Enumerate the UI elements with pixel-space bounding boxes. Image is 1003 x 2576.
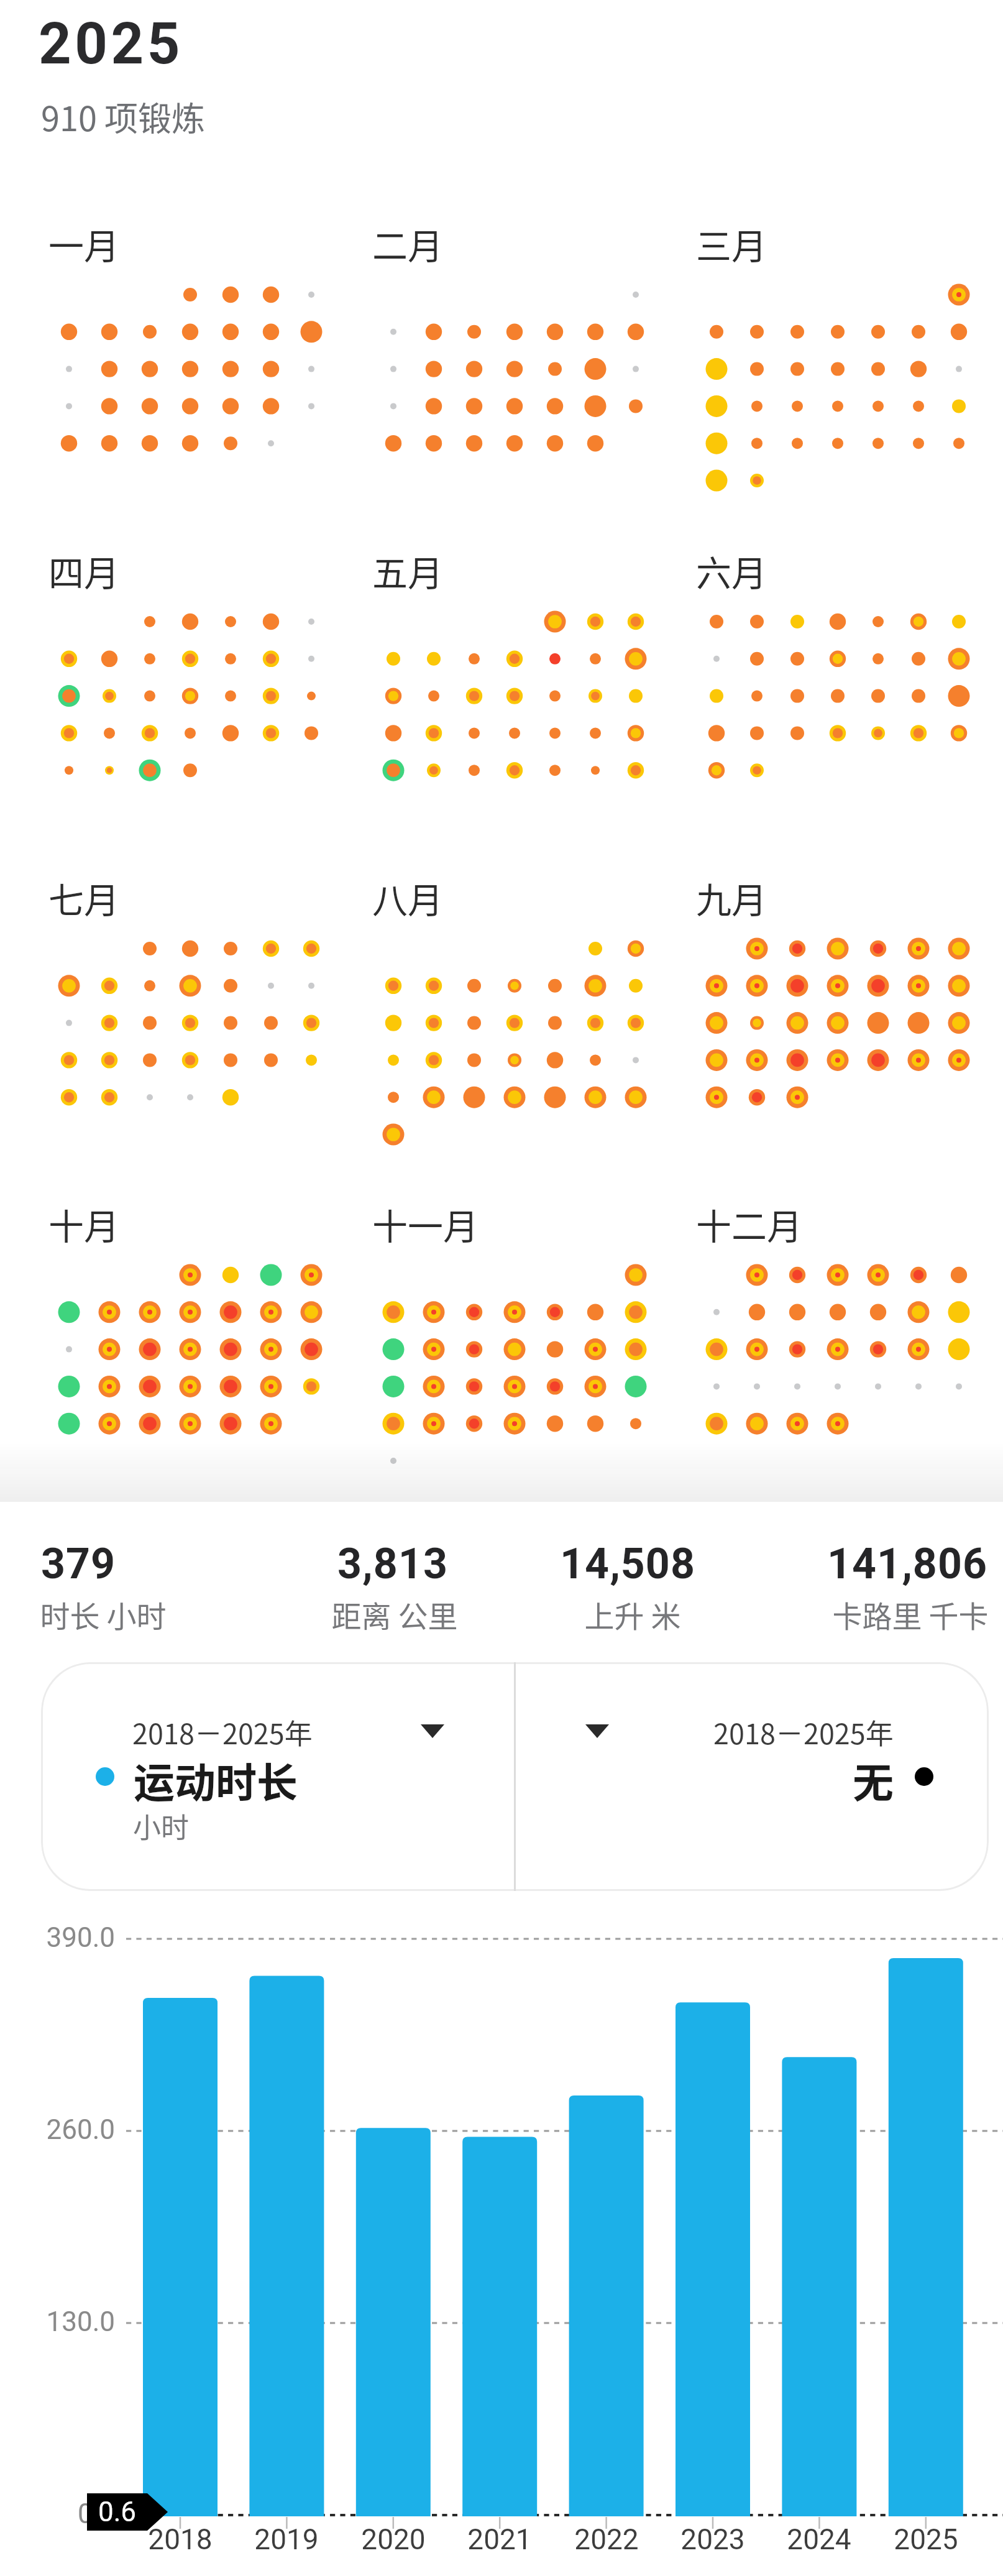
button[interactable]: 十月	[48, 1198, 347, 1491]
staticText: 小时	[133, 1806, 190, 1846]
staticText: 2018	[124, 2523, 236, 2556]
staticText: 七月	[48, 872, 119, 924]
staticText: 八月	[372, 872, 443, 924]
button[interactable]: 六月	[696, 545, 994, 837]
staticText: 379	[0, 1539, 215, 1589]
button[interactable]: 五月	[372, 545, 671, 837]
button[interactable]: 四月	[48, 545, 347, 837]
button[interactable]: 七月	[48, 872, 347, 1164]
button[interactable]: 十一月	[372, 1198, 671, 1491]
staticText: 四月	[48, 545, 119, 597]
staticText: 0	[78, 2498, 93, 2530]
button[interactable]: Choose metric	[402, 1709, 464, 1755]
staticText: 十一月	[372, 1198, 479, 1250]
staticText: 2024	[763, 2523, 875, 2556]
staticText: 390.0	[25, 1921, 115, 1954]
staticText: 2021	[444, 2523, 556, 2556]
staticText: 运动时长	[134, 1750, 298, 1810]
staticText: 2025	[39, 11, 184, 78]
button[interactable]: 八月	[372, 872, 671, 1164]
staticText: 一月	[48, 218, 119, 270]
staticText: 十二月	[696, 1198, 802, 1250]
staticText: 0.6	[98, 2496, 137, 2528]
staticText: 260.0	[25, 2114, 115, 2146]
button[interactable]	[41, 1662, 515, 1891]
button[interactable]: 三月	[696, 218, 994, 510]
staticText: 五月	[372, 545, 443, 597]
staticText: 2022	[551, 2523, 662, 2556]
staticText: 时长 小时	[0, 1593, 240, 1636]
button[interactable]: 九月	[696, 872, 994, 1164]
staticText: 141,806	[771, 1539, 1003, 1589]
staticText: 六月	[696, 545, 767, 597]
staticText: 130.0	[25, 2306, 115, 2338]
staticText: 2018－2025年	[132, 1712, 313, 1752]
staticText: 二月	[372, 218, 443, 270]
staticText: 卡路里 千卡	[774, 1593, 1003, 1636]
staticText: 距离 公里	[258, 1593, 531, 1636]
staticText: 2018－2025年	[713, 1712, 894, 1752]
staticText: 三月	[696, 218, 767, 270]
button[interactable]: 十二月	[696, 1198, 994, 1491]
button[interactable]: Choose comparison	[567, 1709, 629, 1755]
staticText: 910 项锻炼	[41, 92, 206, 140]
button[interactable]: 二月	[372, 218, 671, 510]
staticText: 2023	[657, 2523, 769, 2556]
button[interactable]	[515, 1662, 989, 1891]
staticText: 3,813	[256, 1539, 529, 1589]
staticText: 无	[853, 1750, 894, 1810]
staticText: 上升 米	[496, 1593, 769, 1636]
staticText: 九月	[696, 872, 767, 924]
staticText: 2019	[231, 2523, 342, 2556]
button[interactable]: 一月	[48, 218, 347, 510]
staticText: 14,508	[491, 1539, 764, 1589]
button[interactable]: Selected value 0.6	[87, 2493, 168, 2531]
staticText: 2020	[337, 2523, 449, 2556]
staticText: 十月	[48, 1198, 119, 1250]
staticText: 2025	[870, 2523, 982, 2556]
